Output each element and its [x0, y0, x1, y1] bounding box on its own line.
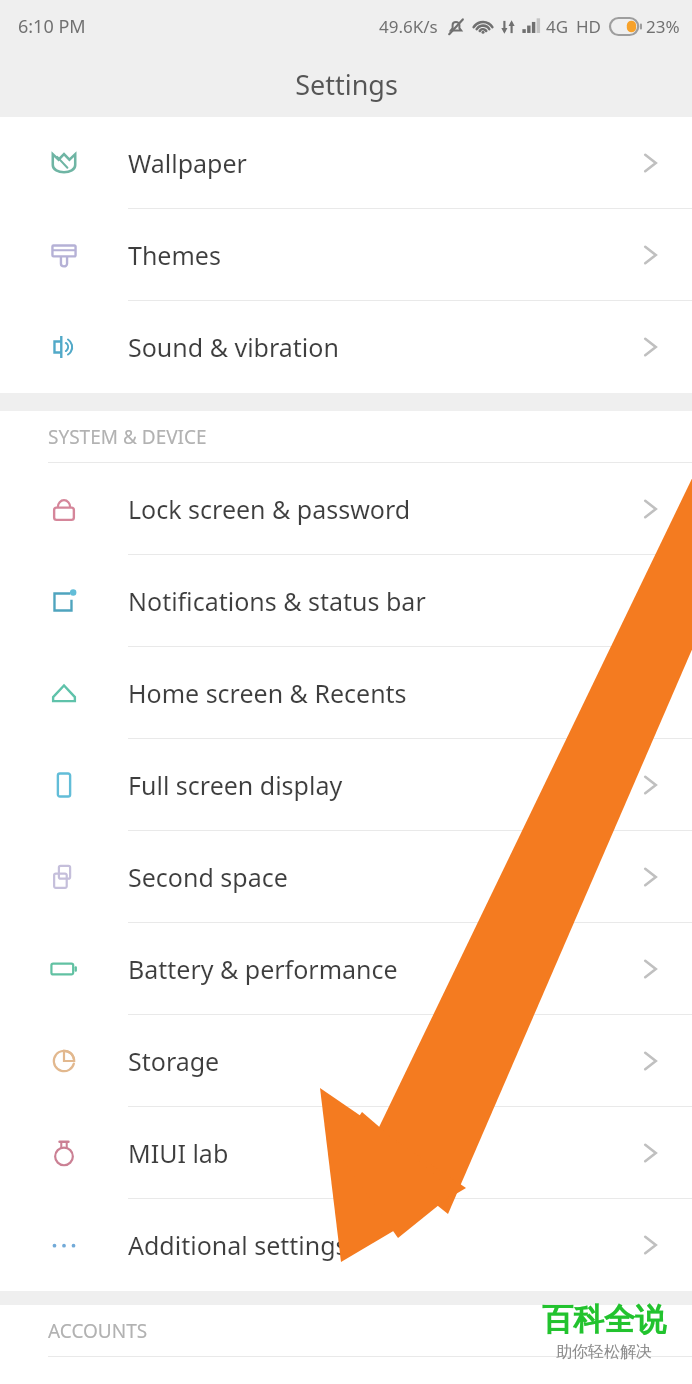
staticText: Lock screen & password	[128, 492, 411, 526]
other: Wi-Fi	[473, 17, 493, 37]
staticText: SYSTEM & DEVICE	[48, 424, 207, 450]
button[interactable]: Themes	[0, 209, 692, 301]
button[interactable]: Sound and vibration	[0, 301, 692, 393]
staticText: 百科全说	[542, 1300, 666, 1339]
staticText: Battery & performance	[128, 952, 398, 986]
staticText: Themes	[128, 238, 221, 272]
staticText: MIUI lab	[128, 1136, 229, 1170]
staticText: 助你轻松解决	[556, 1342, 652, 1362]
staticText: Settings	[295, 66, 398, 103]
button[interactable]: Additional settings	[0, 1199, 692, 1291]
other: Data transfer	[499, 18, 517, 36]
other: Battery 23 percent	[610, 18, 642, 35]
button[interactable]: Full screen display	[0, 739, 692, 831]
staticText: Home screen & Recents	[128, 676, 407, 710]
staticText: HD	[576, 15, 602, 38]
button[interactable]: Home screen	[0, 647, 692, 739]
staticText: 23%	[646, 15, 680, 38]
button[interactable]: MIUI lab	[0, 1107, 692, 1199]
staticText: 4G	[546, 15, 569, 38]
button[interactable]: Battery	[0, 923, 692, 1015]
staticText: Second space	[128, 860, 288, 894]
staticText: ACCOUNTS	[48, 1318, 148, 1344]
button[interactable]: Lock screen	[0, 463, 692, 555]
staticText: Storage	[128, 1044, 220, 1078]
staticText: Additional settings	[128, 1228, 348, 1262]
staticText: Full screen display	[128, 768, 343, 802]
other: Silent mode	[446, 17, 466, 37]
other: Signal	[522, 17, 541, 36]
staticText: 6:10 PM	[18, 14, 86, 39]
button[interactable]: Second space	[0, 831, 692, 923]
staticText: Notifications & status bar	[128, 584, 426, 618]
staticText: 49.6K/s	[379, 15, 438, 38]
staticText: Sound & vibration	[128, 330, 339, 364]
button[interactable]: Notifications	[0, 555, 692, 647]
button[interactable]: Storage	[0, 1015, 692, 1107]
button[interactable]: Wallpaper	[0, 117, 692, 209]
staticText: Wallpaper	[128, 146, 247, 180]
